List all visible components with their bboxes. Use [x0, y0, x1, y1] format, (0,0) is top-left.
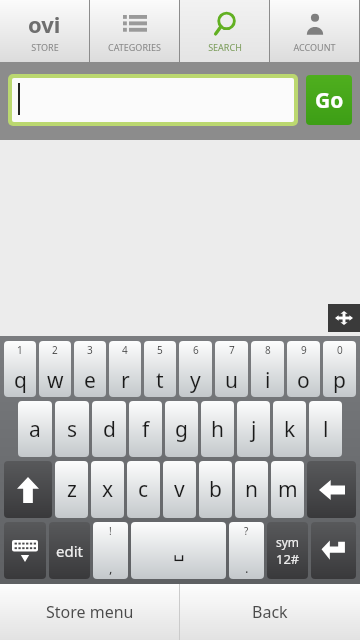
staticText: d: [103, 415, 116, 444]
button[interactable]: 3: [74, 341, 106, 397]
staticText: 2: [52, 343, 58, 357]
staticText: m: [278, 475, 298, 504]
button[interactable]: j: [237, 401, 270, 457]
button[interactable]: x: [91, 461, 124, 518]
staticText: p: [333, 366, 346, 395]
staticText: ACCOUNT: [293, 41, 336, 53]
staticText: 8: [265, 343, 271, 357]
staticText: Go: [315, 86, 344, 115]
button[interactable]: ?: [229, 522, 264, 579]
button[interactable]: v: [163, 461, 196, 518]
button[interactable]: 8: [251, 341, 284, 397]
staticText: ovi: [28, 9, 61, 39]
button[interactable]: n: [235, 461, 268, 518]
staticText: x: [102, 475, 114, 504]
button[interactable]: Enter: [311, 522, 356, 579]
button[interactable]: h: [201, 401, 234, 457]
button[interactable]: Backspace: [307, 461, 356, 518]
staticText: t: [156, 366, 164, 395]
button[interactable]: m: [271, 461, 304, 518]
staticText: 1: [17, 343, 23, 357]
staticText: l: [323, 415, 329, 444]
button[interactable]: l: [309, 401, 342, 457]
staticText: edit: [56, 541, 83, 561]
staticText: 7: [229, 343, 235, 357]
button[interactable]: Hide keyboard: [4, 522, 46, 579]
button[interactable]: SEARCH: [180, 0, 269, 62]
staticText: g: [175, 415, 188, 444]
button[interactable]: 0: [323, 341, 356, 397]
button[interactable]: Shift: [4, 461, 52, 518]
button[interactable]: Go: [306, 75, 352, 125]
staticText: Back: [252, 601, 288, 623]
button[interactable]: 9: [287, 341, 320, 397]
staticText: !: [109, 524, 112, 538]
button[interactable]: ovi: [0, 0, 89, 62]
button[interactable]: Store menu: [0, 584, 179, 640]
staticText: Store menu: [46, 601, 134, 623]
staticText: CATEGORIES: [108, 41, 161, 53]
staticText: k: [284, 415, 296, 444]
button[interactable]: g: [165, 401, 198, 457]
button[interactable]: Symbols: [267, 522, 308, 579]
staticText: q: [14, 366, 27, 395]
button[interactable]: 2: [39, 341, 71, 397]
staticText: 6: [193, 343, 199, 357]
button[interactable]: c: [127, 461, 160, 518]
button[interactable]: 5: [144, 341, 176, 397]
button[interactable]: edit: [49, 522, 90, 579]
staticText: n: [245, 475, 258, 504]
staticText: ,: [109, 559, 113, 577]
staticText: 0: [337, 343, 343, 357]
staticText: s: [67, 415, 78, 444]
staticText: c: [138, 475, 149, 504]
button[interactable]: [12, 78, 294, 122]
button[interactable]: Back: [180, 584, 360, 640]
button[interactable]: 1: [4, 341, 36, 397]
staticText: SEARCH: [208, 41, 242, 53]
staticText: v: [174, 475, 185, 504]
staticText: f: [142, 415, 150, 444]
button[interactable]: f: [129, 401, 162, 457]
button[interactable]: 6: [179, 341, 212, 397]
staticText: y: [190, 366, 201, 395]
staticText: sym: [276, 534, 300, 550]
staticText: STORE: [31, 41, 59, 53]
staticText: 12#: [276, 550, 300, 568]
staticText: e: [84, 366, 96, 395]
button[interactable]: b: [199, 461, 232, 518]
button[interactable]: 7: [215, 341, 248, 397]
button[interactable]: !: [93, 522, 128, 579]
button[interactable]: Move keyboard: [328, 304, 360, 332]
staticText: ␣: [173, 540, 185, 561]
staticText: w: [47, 366, 64, 395]
staticText: u: [225, 366, 238, 395]
button[interactable]: CATEGORIES: [90, 0, 179, 62]
staticText: z: [67, 475, 77, 504]
button[interactable]: ␣: [131, 522, 226, 579]
button[interactable]: d: [92, 401, 126, 457]
staticText: r: [121, 366, 130, 395]
staticText: 4: [122, 343, 128, 357]
button[interactable]: 4: [109, 341, 141, 397]
button[interactable]: a: [18, 401, 52, 457]
staticText: 3: [87, 343, 93, 357]
button[interactable]: z: [55, 461, 88, 518]
button[interactable]: s: [55, 401, 89, 457]
staticText: 5: [157, 343, 163, 357]
staticText: .: [245, 559, 249, 577]
staticText: o: [297, 366, 310, 395]
staticText: 9: [301, 343, 307, 357]
staticText: j: [251, 415, 257, 444]
staticText: b: [209, 475, 222, 504]
button[interactable]: k: [273, 401, 306, 457]
staticText: i: [265, 366, 271, 395]
button[interactable]: ACCOUNT: [270, 0, 359, 62]
staticText: ?: [244, 524, 249, 538]
staticText: h: [211, 415, 224, 444]
staticText: a: [29, 415, 41, 444]
